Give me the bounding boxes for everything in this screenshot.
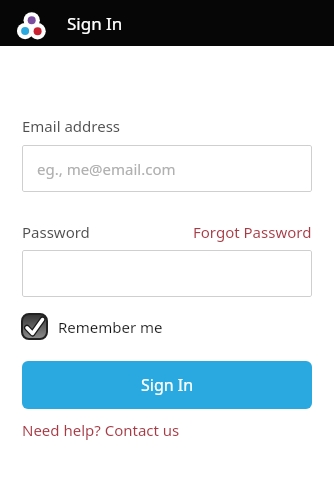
- button[interactable]: Forgot Password: [193, 222, 312, 242]
- staticText: eg., me@email.com: [37, 159, 176, 179]
- button[interactable]: [22, 250, 312, 297]
- button[interactable]: Sign In: [22, 361, 312, 409]
- button[interactable]: eg., me@email.com: [22, 145, 312, 192]
- staticText: Sign In: [67, 12, 123, 35]
- staticText: Sign In: [141, 374, 194, 396]
- staticText: Remember me: [58, 317, 163, 337]
- button[interactable]: Remember me: [22, 314, 163, 339]
- button[interactable]: Need help? Contact us: [22, 420, 180, 440]
- staticText: Password: [22, 222, 90, 242]
- staticText: Email address: [22, 116, 121, 136]
